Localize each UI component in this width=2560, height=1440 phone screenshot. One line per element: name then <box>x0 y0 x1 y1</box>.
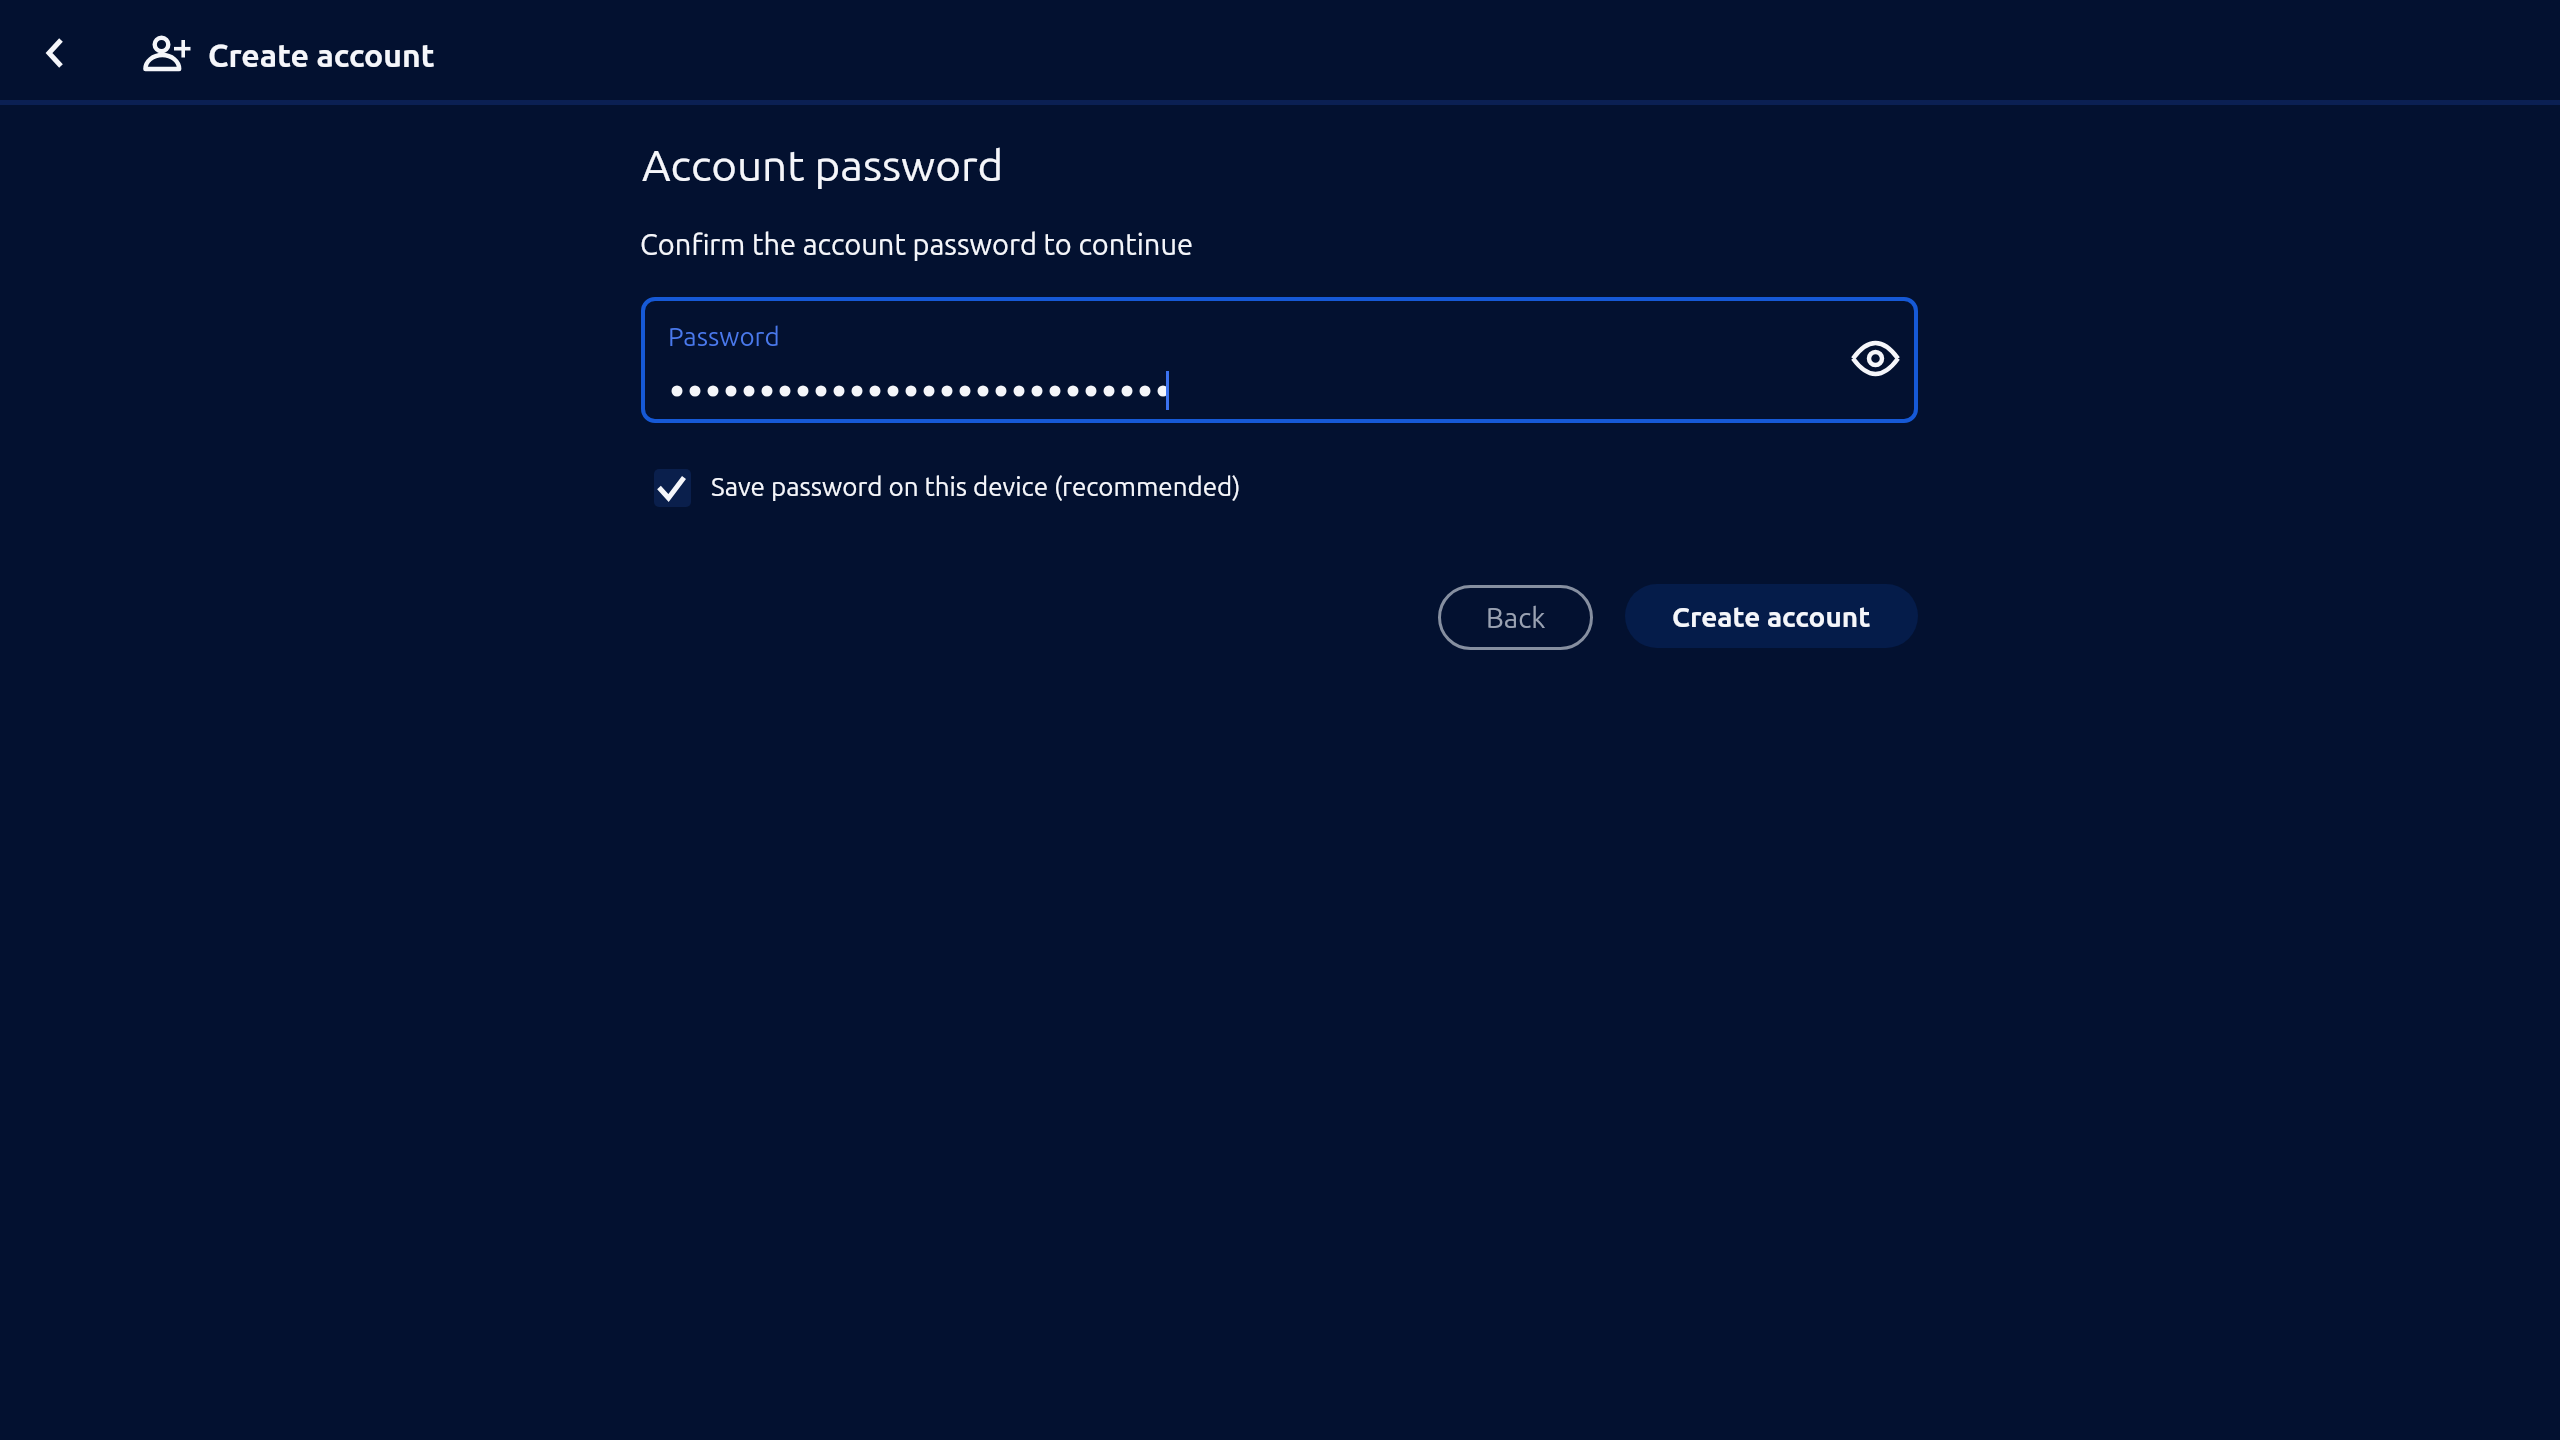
button[interactable] <box>641 297 1918 423</box>
staticText: Create account <box>208 37 435 73</box>
staticText: Confirm the account password to continue <box>640 228 1193 261</box>
button[interactable]: Create account <box>1625 584 1918 648</box>
staticText: Account password <box>642 140 1004 189</box>
staticText: Password <box>668 322 780 351</box>
staticText: Save password on this device (recommende… <box>711 472 1241 501</box>
button[interactable] <box>28 25 84 81</box>
button[interactable]: Back <box>1438 585 1593 650</box>
staticText: Back <box>1486 602 1546 633</box>
staticText: Create account <box>1672 601 1871 632</box>
button[interactable] <box>654 469 691 507</box>
